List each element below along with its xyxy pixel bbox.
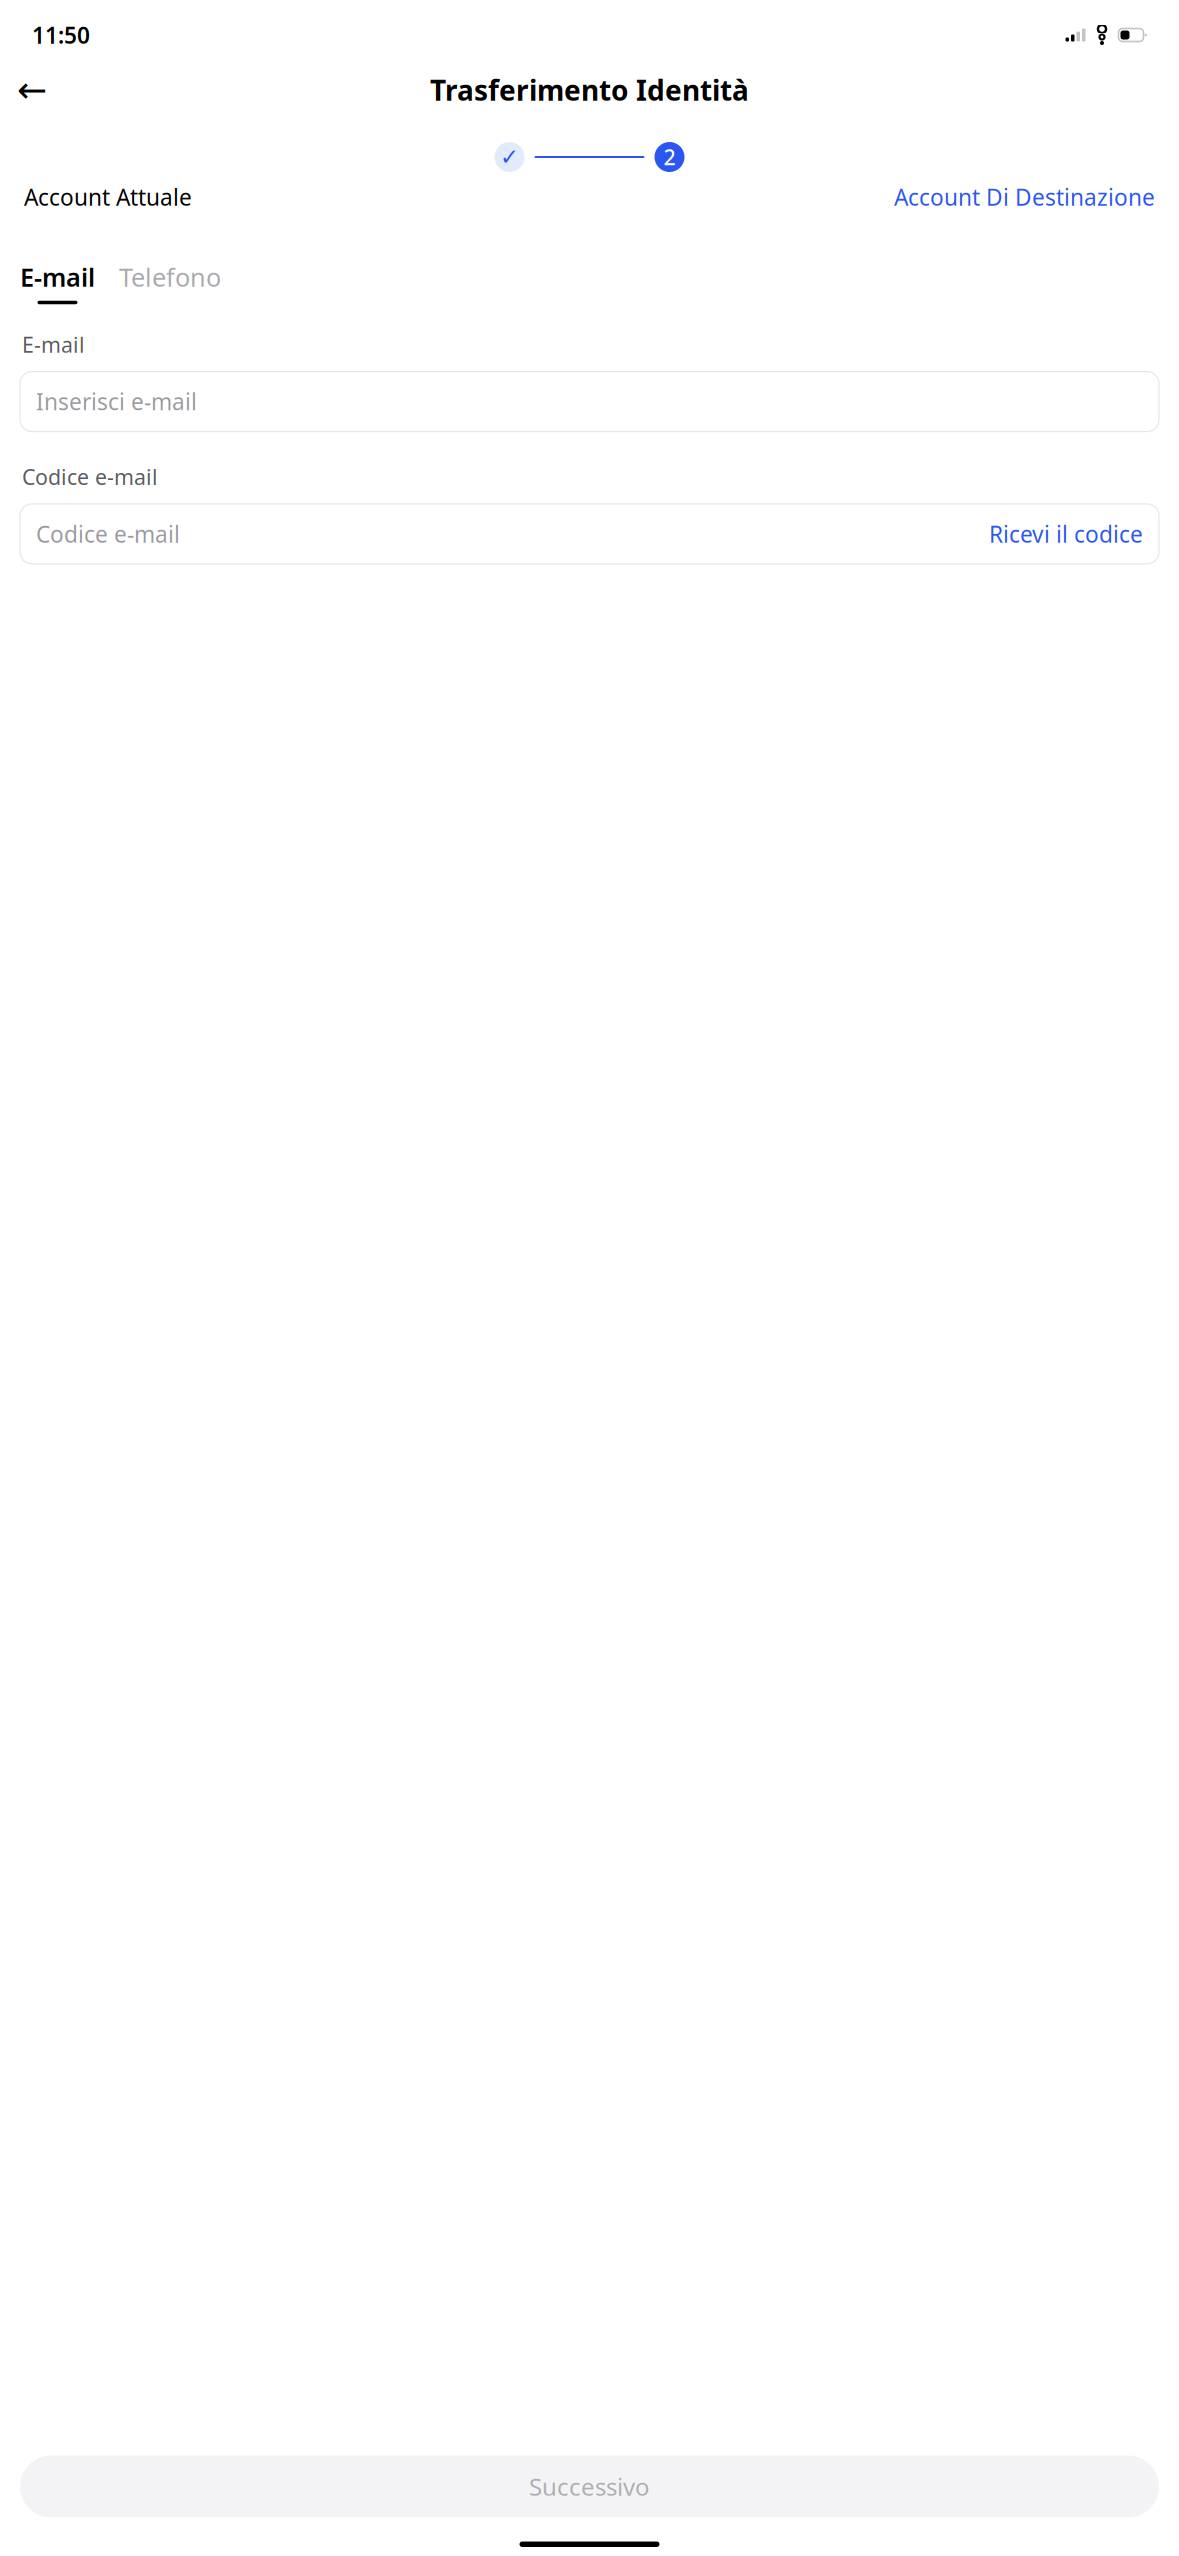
staticText: ← <box>17 70 47 110</box>
staticText: Account Attuale <box>24 182 192 212</box>
staticText: Successivo <box>529 2471 650 2502</box>
button[interactable]: Ricevi il codice <box>989 519 1143 549</box>
staticText: 2 <box>663 143 675 171</box>
staticText: Ricevi il codice <box>989 519 1143 549</box>
staticText: Codice e-mail <box>36 519 180 549</box>
button[interactable]: Back <box>10 68 54 112</box>
staticText: E-mail <box>20 260 95 294</box>
staticText: 11:50 <box>32 20 90 50</box>
staticText: Account Di Destinazione <box>894 182 1155 212</box>
staticText: Codice e-mail <box>22 463 158 491</box>
staticText: ✓ <box>500 144 519 170</box>
button[interactable]: E-mail <box>20 260 95 304</box>
staticText: Telefono <box>119 260 221 294</box>
button[interactable]: Successivo <box>20 2455 1159 2517</box>
staticText: Inserisci e-mail <box>36 386 197 417</box>
staticText: Trasferimento Identità <box>430 71 749 109</box>
staticText: E-mail <box>22 330 85 358</box>
button[interactable]: Telefono <box>119 260 221 304</box>
